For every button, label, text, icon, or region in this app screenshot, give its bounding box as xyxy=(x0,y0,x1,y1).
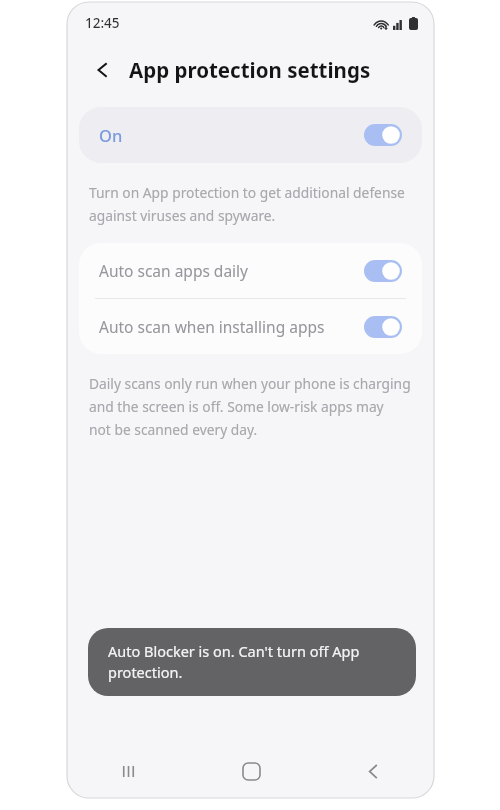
staticText: Auto scan when installing apps xyxy=(99,316,325,337)
button[interactable]: Back xyxy=(85,52,121,88)
button[interactable]: Auto Blocker is on. Can't turn off App p… xyxy=(88,628,416,696)
staticText: 12:45 xyxy=(85,14,120,32)
staticText: Auto Blocker is on. Can't turn off App p… xyxy=(108,641,360,683)
staticText: Auto scan apps daily xyxy=(99,260,249,281)
staticText: Turn on App protection to get additional… xyxy=(89,183,405,225)
button[interactable]: Recents xyxy=(67,744,190,798)
button[interactable]: Auto scan when installing apps xyxy=(79,299,422,354)
button[interactable]: Back xyxy=(312,744,434,798)
staticText: Daily scans only run when your phone is … xyxy=(89,374,411,439)
button[interactable]: Home xyxy=(190,744,312,798)
staticText: On xyxy=(99,124,123,146)
button[interactable]: On xyxy=(79,107,422,163)
button[interactable]: Auto scan apps daily xyxy=(79,243,422,298)
staticText: App protection settings xyxy=(129,56,371,84)
